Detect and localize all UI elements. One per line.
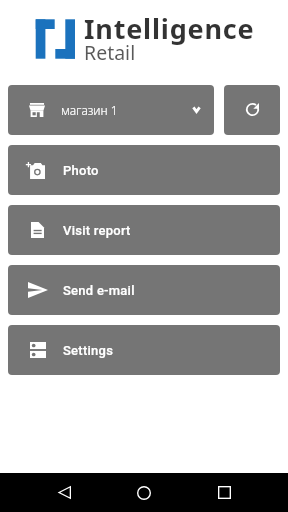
button[interactable]: Visit report	[8, 205, 280, 255]
button[interactable]: Settings	[8, 325, 280, 375]
staticText: Photo	[63, 163, 99, 178]
staticText: Visit report	[63, 223, 131, 238]
button[interactable]: Home	[124, 473, 164, 512]
button[interactable]: Refresh	[224, 85, 280, 135]
staticText: Retail	[84, 39, 136, 66]
button[interactable]: Recent apps	[204, 473, 244, 512]
button[interactable]: Back	[44, 473, 84, 512]
staticText: Send e-mail	[63, 283, 135, 298]
button[interactable]: магазин 1	[8, 85, 214, 135]
button[interactable]: Send e-mail	[8, 265, 280, 315]
staticText: Intelligence	[84, 10, 255, 47]
button[interactable]: Photo	[8, 145, 280, 195]
staticText: Settings	[63, 343, 114, 358]
staticText: магазин 1	[61, 102, 118, 118]
